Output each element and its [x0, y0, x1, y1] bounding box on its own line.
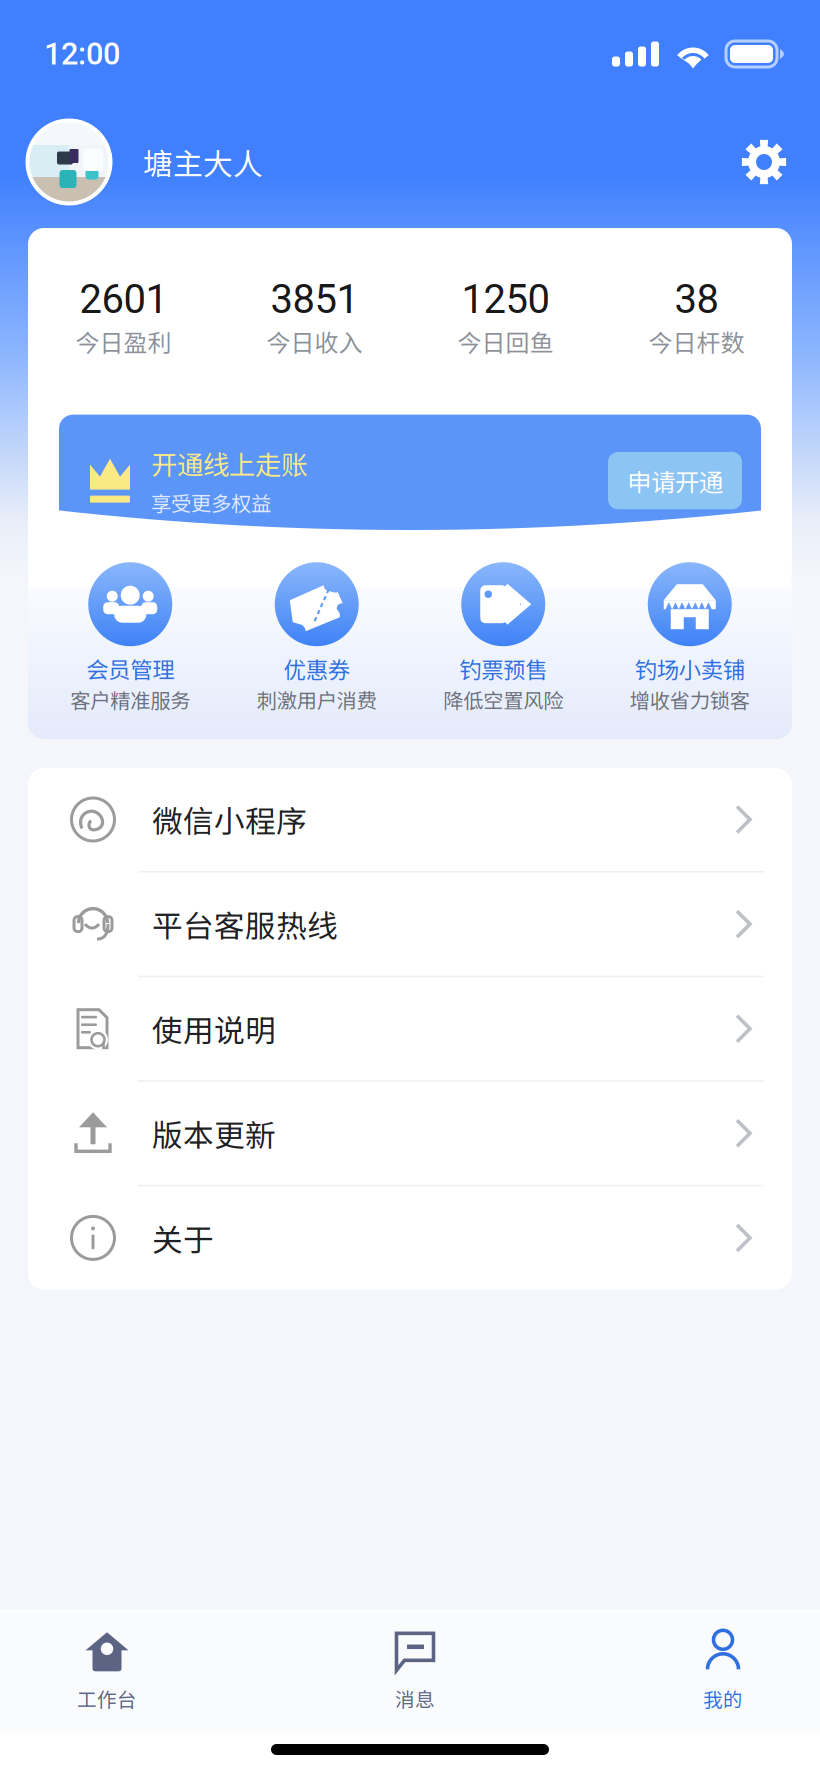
staticText: 今日盈利 [75, 324, 171, 359]
staticText: 开通线上走账 [151, 444, 307, 482]
button[interactable]: 开通线上走账 [59, 415, 761, 547]
button[interactable]: Settings [741, 139, 787, 185]
staticText: 会员管理 [86, 652, 174, 685]
staticText: 钓票预售 [459, 652, 547, 685]
staticText: 版本更新 [152, 1111, 276, 1155]
staticText: 优惠券 [284, 652, 350, 685]
staticText: 降低空置风险 [443, 685, 563, 714]
button[interactable]: Profile photo [26, 119, 112, 205]
button[interactable]: 平台客服热线 [28, 873, 792, 976]
button[interactable]: 消息 [370, 1609, 460, 1733]
staticText: 微信小程序 [152, 797, 307, 842]
button[interactable]: 微信小程序 [28, 768, 792, 871]
staticText: 38 [674, 276, 718, 323]
staticText: 消息 [395, 1684, 435, 1713]
staticText: 3851 [270, 276, 358, 323]
button[interactable]: 使用说明 [28, 977, 792, 1080]
staticText: 申请开通 [627, 463, 723, 498]
staticText: 使用说明 [152, 1006, 276, 1051]
staticText: 12:00 [44, 36, 120, 72]
staticText: 塘主大人 [143, 140, 263, 184]
button[interactable]: 关于 [28, 1186, 792, 1289]
button[interactable]: 工作台 [62, 1609, 152, 1733]
staticText: 增收省力锁客 [630, 685, 750, 714]
staticText: 我的 [703, 1684, 743, 1713]
staticText: 平台客服热线 [152, 902, 338, 946]
staticText: 今日回鱼 [457, 324, 553, 359]
staticText: 今日收入 [266, 324, 362, 359]
staticText: 工作台 [77, 1684, 137, 1713]
button[interactable]: 优惠券 [223, 562, 410, 714]
button[interactable]: 钓票预售 [410, 562, 596, 714]
button[interactable]: 版本更新 [28, 1082, 792, 1185]
button[interactable]: 钓场小卖铺 [596, 562, 783, 714]
staticText: 钓场小卖铺 [635, 652, 745, 685]
staticText: 1250 [461, 276, 549, 323]
button[interactable]: 会员管理 [37, 562, 223, 714]
staticText: 今日杆数 [648, 324, 744, 359]
staticText: 2601 [79, 276, 167, 323]
staticText: 关于 [152, 1216, 214, 1260]
staticText: 享受更多权益 [151, 487, 271, 517]
staticText: 客户精准服务 [70, 685, 190, 714]
button[interactable]: 我的 [678, 1609, 768, 1733]
staticText: 刺激用户消费 [257, 685, 377, 714]
